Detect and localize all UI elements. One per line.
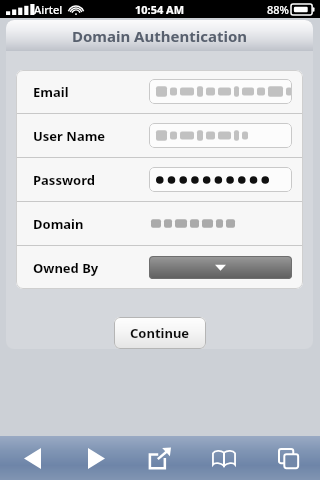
staticText: 10:54 AM: [135, 2, 185, 17]
button[interactable]: Tabs: [256, 436, 320, 480]
button[interactable]: Email: [16, 70, 303, 113]
staticText: Domain Authentication: [72, 26, 248, 46]
button[interactable]: [149, 79, 292, 104]
staticText: User Name: [33, 127, 149, 145]
button[interactable]: User Name: [16, 114, 303, 157]
staticText: Email: [33, 83, 149, 101]
button[interactable]: Forward: [64, 436, 128, 480]
staticText: Continue: [130, 324, 190, 342]
staticText: Password: [33, 171, 149, 189]
staticText: 88%: [267, 2, 289, 17]
button[interactable]: Password: [16, 158, 303, 201]
staticText: Domain: [33, 215, 149, 233]
button[interactable]: Owned By: [16, 246, 303, 289]
button[interactable]: Continue: [114, 317, 206, 349]
button[interactable]: Back: [0, 436, 64, 480]
button[interactable]: Share: [128, 436, 192, 480]
button[interactable]: Domain: [16, 202, 303, 245]
staticText: Airtel: [34, 2, 63, 17]
button[interactable]: [149, 123, 292, 148]
button[interactable]: Personal: [149, 256, 292, 279]
button[interactable]: Bookmarks: [192, 436, 256, 480]
staticText: Owned By: [33, 259, 149, 277]
button[interactable]: [149, 167, 292, 192]
